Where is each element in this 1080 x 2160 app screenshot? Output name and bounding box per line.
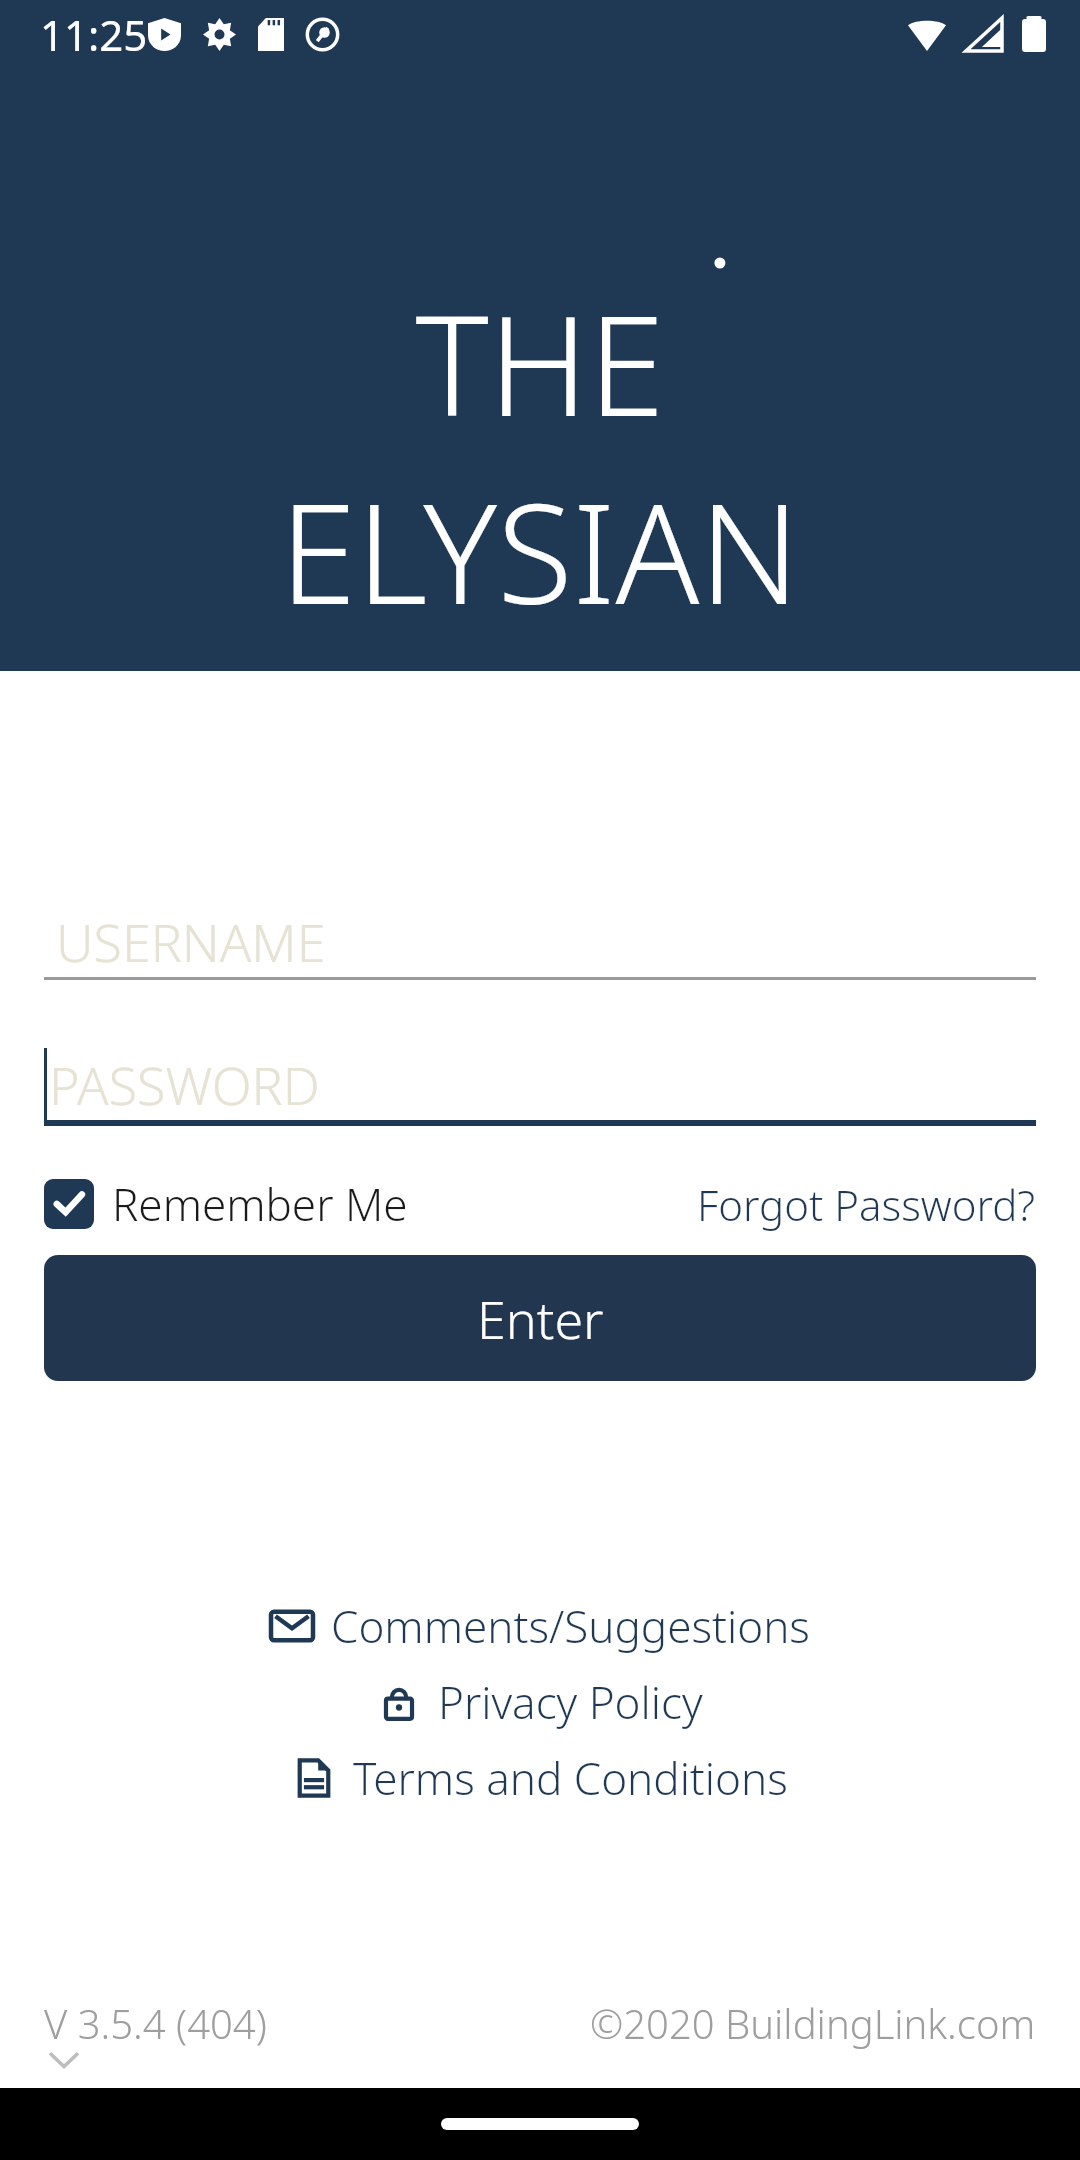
staticText: 11:25	[40, 6, 148, 63]
button[interactable]: Terms and Conditions	[293, 1748, 788, 1808]
button[interactable]: Forgot Password?	[697, 1176, 1036, 1233]
staticText: Enter	[477, 1283, 604, 1354]
button[interactable]: Comments and Suggestions	[271, 1596, 810, 1656]
button[interactable]: USERNAME	[44, 905, 1036, 980]
staticText: USERNAME	[56, 906, 326, 977]
button[interactable]: Remember Me	[44, 1174, 416, 1234]
staticText: V 3.5.4 (404)	[44, 1996, 267, 2050]
other: Privacy Policy	[378, 1681, 420, 1723]
staticText: Forgot Password?	[697, 1176, 1036, 1233]
staticText: Privacy Policy	[438, 1672, 703, 1732]
staticText: THE ELYSIAN	[190, 268, 890, 644]
staticText: ©2020 BuildingLink.com	[590, 1996, 1036, 2050]
staticText: Remember Me	[112, 1174, 408, 1234]
button[interactable]: Enter	[44, 1255, 1036, 1381]
button[interactable]: Privacy Policy	[378, 1672, 703, 1732]
button[interactable]: PASSWORD	[44, 1048, 1036, 1126]
staticText: Terms and Conditions	[353, 1748, 788, 1808]
other: Comments and Suggestions	[271, 1605, 313, 1647]
other: Terms and Conditions	[293, 1757, 335, 1799]
staticText: PASSWORD	[49, 1049, 320, 1120]
staticText: Comments/Suggestions	[331, 1596, 810, 1656]
